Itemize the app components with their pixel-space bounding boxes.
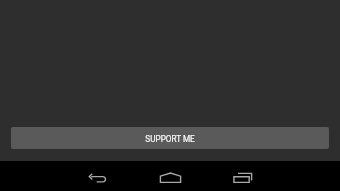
- button[interactable]: SUPPORT ME: [11, 127, 329, 149]
- button[interactable]: Back: [67, 161, 127, 191]
- button[interactable]: Home: [140, 161, 200, 191]
- button[interactable]: Recent apps: [212, 161, 272, 191]
- staticText: SUPPORT ME: [145, 134, 195, 144]
